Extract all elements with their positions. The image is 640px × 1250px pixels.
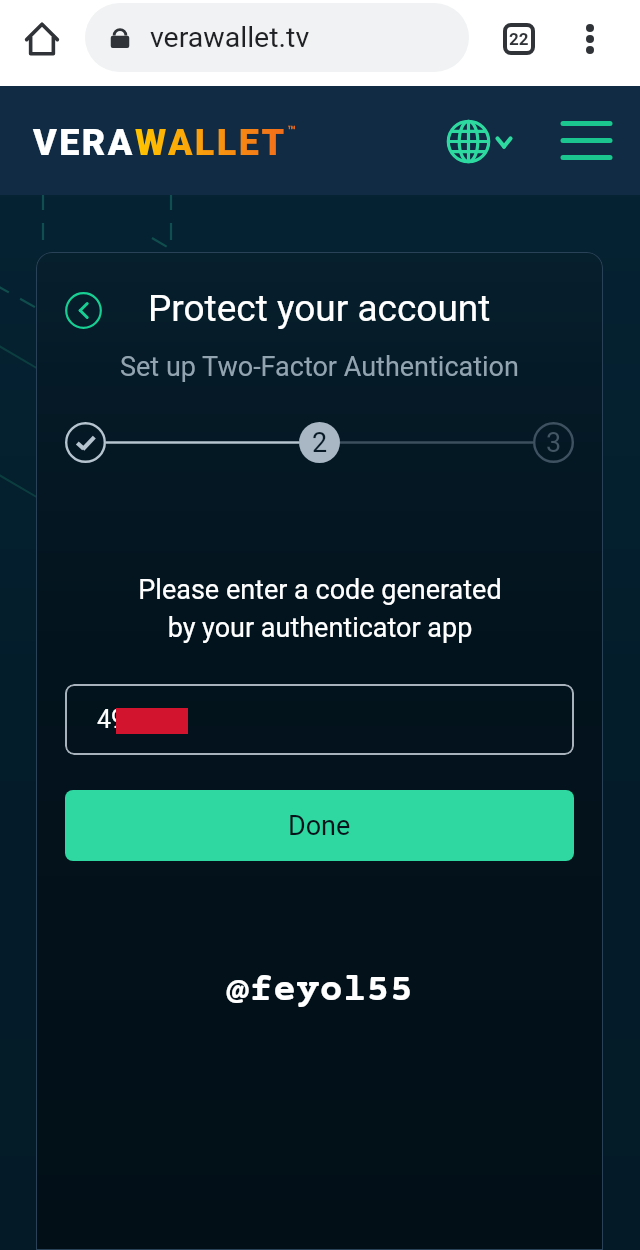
staticText: Done	[288, 810, 351, 842]
staticText: 2	[312, 427, 328, 459]
staticText: Set up Two-Factor Authentication	[120, 351, 519, 383]
staticText: WALLET	[135, 122, 287, 164]
button[interactable]: 49	[65, 684, 574, 755]
staticText: VERA	[33, 122, 135, 164]
staticText: @feyol55	[226, 970, 414, 1014]
staticText: verawallet.tv	[150, 21, 310, 54]
button[interactable]: Tabs	[492, 13, 546, 65]
button[interactable]: More options	[565, 14, 615, 64]
staticText: Protect your account	[148, 287, 491, 330]
staticText: Please enter a code generated by your au…	[138, 574, 502, 644]
staticText: 22	[509, 29, 529, 49]
staticText: 3	[546, 427, 562, 459]
button[interactable]: Home	[16, 13, 68, 65]
staticText: 49	[97, 705, 126, 734]
button[interactable]: Menu	[556, 112, 616, 168]
button[interactable]: Back	[65, 292, 102, 329]
button[interactable]: verawallet.tv	[85, 3, 469, 72]
button[interactable]: Done	[65, 790, 574, 861]
button[interactable]: Language	[441, 114, 519, 169]
staticText: ™	[287, 123, 296, 138]
